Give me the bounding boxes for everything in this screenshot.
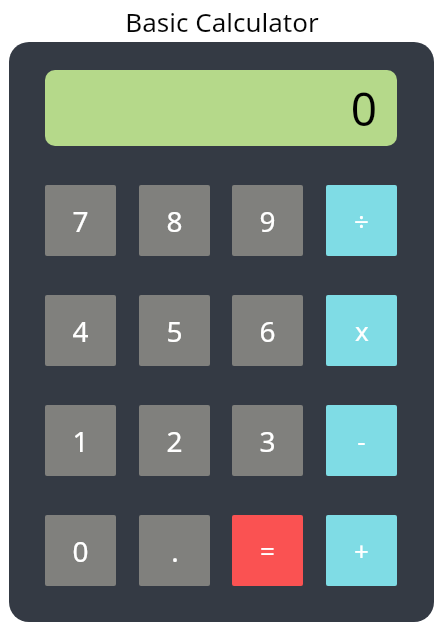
staticText: x (355, 313, 369, 348)
button[interactable]: 4 (45, 295, 116, 366)
staticText: 3 (259, 422, 276, 460)
button[interactable]: 2 (139, 405, 210, 476)
button[interactable]: Equals (232, 515, 303, 586)
staticText: = (260, 533, 275, 568)
button[interactable]: 6 (232, 295, 303, 366)
staticText: 0 (350, 77, 377, 140)
staticText: 8 (166, 202, 183, 240)
button[interactable]: 0 (45, 70, 397, 146)
button[interactable]: Subtract (326, 405, 397, 476)
button[interactable]: 1 (45, 405, 116, 476)
button[interactable]: 0 (45, 515, 116, 586)
staticText: 9 (259, 202, 276, 240)
staticText: 6 (259, 312, 276, 350)
staticText: 7 (72, 202, 89, 240)
staticText: 1 (72, 422, 89, 460)
staticText: 2 (166, 422, 183, 460)
staticText: - (357, 423, 366, 458)
staticText: 4 (72, 312, 89, 350)
button[interactable]: 3 (232, 405, 303, 476)
staticText: 0 (72, 532, 89, 570)
staticText: Basic Calculator (125, 4, 319, 39)
button[interactable]: Divide (326, 185, 397, 256)
button[interactable]: Multiply (326, 295, 397, 366)
button[interactable]: 7 (45, 185, 116, 256)
staticText: + (354, 533, 369, 568)
button[interactable]: 5 (139, 295, 210, 366)
staticText: ÷ (354, 203, 369, 238)
staticText: 5 (166, 312, 183, 350)
button[interactable]: . (139, 515, 210, 586)
button[interactable]: 8 (139, 185, 210, 256)
button[interactable]: 9 (232, 185, 303, 256)
button[interactable]: Add (326, 515, 397, 586)
staticText: . (171, 532, 179, 570)
